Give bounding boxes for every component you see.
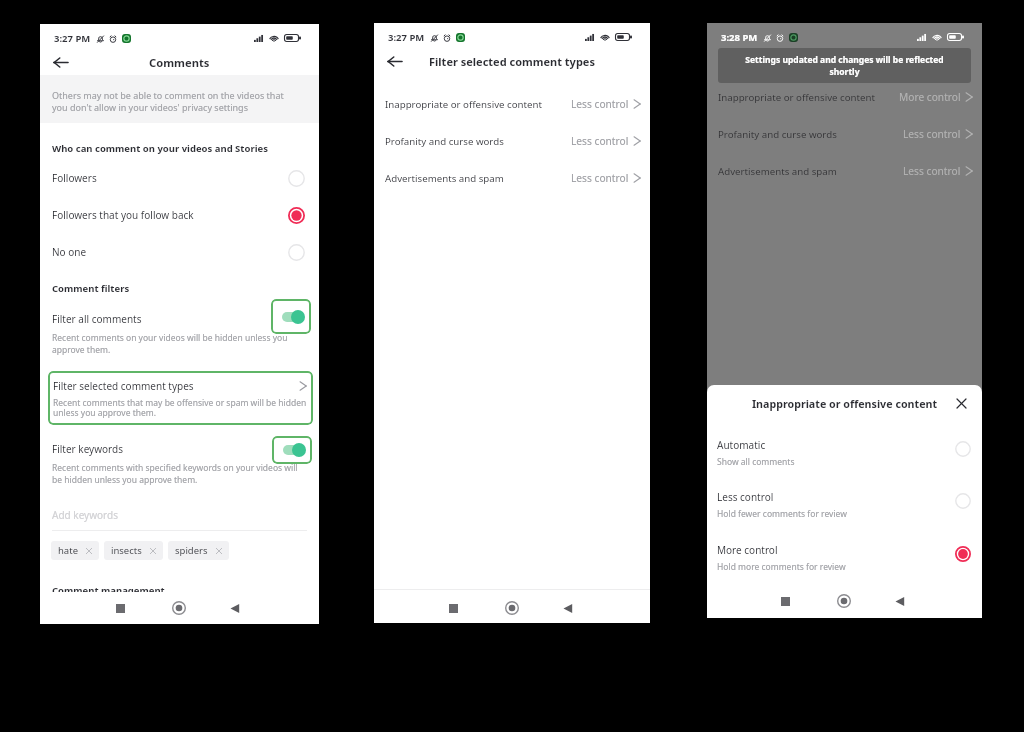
staticText: Filter keywords	[52, 442, 123, 456]
button[interactable]: Back	[47, 49, 73, 75]
button[interactable]: Recents	[772, 588, 798, 614]
button[interactable]: Profanity and curse words	[374, 127, 650, 155]
button[interactable]: Inappropriate or offensive content	[707, 83, 982, 111]
staticText: Followers	[52, 171, 288, 185]
staticText: Less control	[903, 164, 961, 178]
staticText: More control	[899, 90, 961, 104]
staticText: Recent comments that may be offensive or…	[53, 397, 310, 419]
button[interactable]: Back navigation	[555, 595, 581, 621]
staticText: Who can comment on your videos and Stori…	[52, 142, 268, 155]
button[interactable]: More control	[707, 543, 982, 575]
staticText: Comment management	[52, 584, 165, 597]
staticText: Recent comments on your videos will be h…	[52, 332, 297, 356]
staticText: 3:27 PM	[54, 32, 91, 45]
button[interactable]: Automatic	[707, 438, 982, 470]
button[interactable]: Profanity and curse words	[707, 120, 982, 148]
staticText: Filter selected comment types	[53, 379, 299, 393]
staticText: Others may not be able to comment on the…	[52, 89, 300, 113]
staticText: Filter selected comment types	[429, 54, 595, 69]
button[interactable]: Home	[831, 588, 857, 614]
staticText: Comments	[149, 55, 210, 70]
staticText: Less control	[571, 134, 629, 148]
staticText: 3:27 PM	[388, 31, 425, 44]
button[interactable]: Back	[381, 48, 407, 74]
button[interactable]: Followers	[40, 164, 319, 192]
staticText: Profanity and curse words	[718, 128, 903, 141]
button[interactable]: Close	[950, 392, 972, 414]
staticText: insects	[111, 544, 142, 557]
staticText: Profanity and curse words	[385, 135, 571, 148]
staticText: Comment filters	[52, 282, 130, 295]
staticText: Less control	[571, 97, 629, 111]
staticText: Add keywords	[52, 508, 118, 522]
staticText: Followers that you follow back	[52, 208, 288, 222]
button[interactable]: Home	[499, 595, 525, 621]
button[interactable]: Followers that you follow back	[40, 201, 319, 229]
button[interactable]: Back navigation	[887, 588, 913, 614]
staticText: Recent comments with specified keywords …	[52, 462, 302, 486]
button[interactable]: Advertisements and spam	[707, 157, 982, 185]
button[interactable]: spiders	[168, 541, 229, 560]
button[interactable]: Less control	[707, 490, 982, 522]
staticText: spiders	[175, 544, 208, 557]
button[interactable]: No one	[40, 238, 319, 266]
button[interactable]: hate	[51, 541, 99, 560]
staticText: Advertisements and spam	[385, 172, 571, 185]
button[interactable]: Filter selected comment types	[48, 371, 313, 425]
button[interactable]: Inappropriate or offensive content	[374, 90, 650, 118]
staticText: Advertisements and spam	[718, 165, 903, 178]
button[interactable]: insects	[104, 541, 163, 560]
staticText: Less control	[717, 490, 774, 504]
staticText: Hold fewer comments for review	[717, 508, 847, 520]
staticText: Inappropriate or offensive content	[385, 98, 571, 111]
staticText: Less control	[903, 127, 961, 141]
button[interactable]: Recents	[107, 595, 133, 621]
staticText: Less control	[571, 171, 629, 185]
staticText: Hold more comments for review	[717, 561, 846, 573]
staticText: Inappropriate or offensive content	[718, 91, 899, 104]
staticText: Automatic	[717, 438, 766, 452]
button[interactable]: Advertisements and spam	[374, 164, 650, 192]
staticText: Show all comments	[717, 456, 795, 468]
staticText: Inappropriate or offensive content	[707, 397, 982, 412]
staticText: No one	[52, 245, 288, 259]
button[interactable]: Add keywords	[52, 504, 307, 526]
button[interactable]: Home	[166, 595, 192, 621]
staticText: hate	[58, 544, 78, 557]
staticText: 3:28 PM	[721, 31, 758, 44]
staticText: Filter all comments	[52, 312, 142, 326]
button[interactable]: Toggle	[271, 299, 311, 334]
button[interactable]: Back navigation	[222, 595, 248, 621]
staticText: More control	[717, 543, 778, 557]
staticText: Settings updated and changes will be ref…	[735, 54, 954, 78]
button[interactable]: Toggle	[272, 436, 312, 464]
button[interactable]: Recents	[440, 595, 466, 621]
